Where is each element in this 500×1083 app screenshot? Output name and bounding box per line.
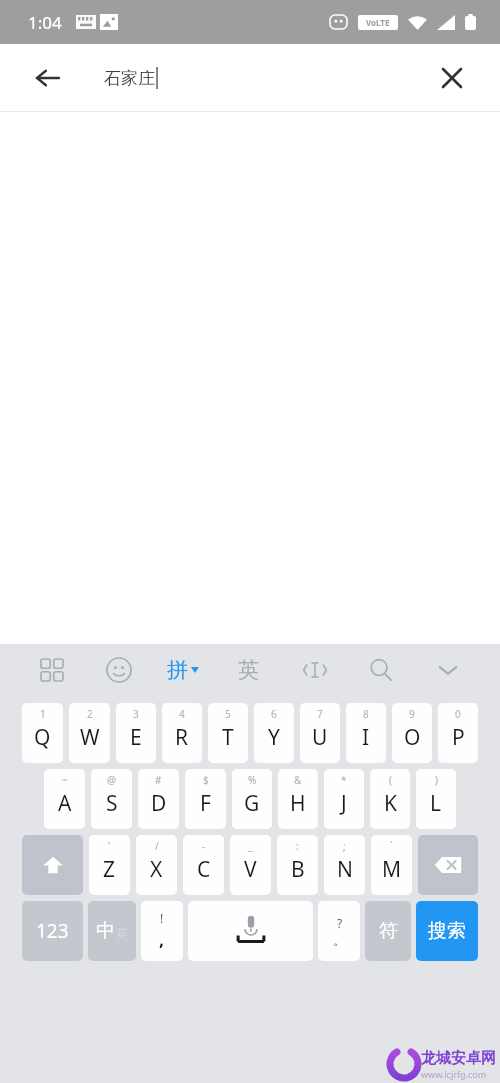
staticText: VoLTE — [366, 17, 390, 28]
button[interactable]: & — [278, 769, 318, 829]
staticText: N — [337, 855, 353, 884]
button[interactable]: 英 — [226, 648, 270, 692]
button[interactable]: Keyboard layouts — [30, 648, 74, 692]
staticText: 4 — [179, 707, 185, 721]
staticText: 7 — [317, 707, 323, 721]
staticText: & — [294, 773, 302, 787]
staticText: R — [175, 723, 189, 752]
staticText: 石家庄 — [104, 68, 155, 89]
button[interactable]: # — [138, 769, 179, 829]
button[interactable]: ; — [324, 835, 365, 895]
staticText: V — [244, 855, 257, 884]
button[interactable]: % — [232, 769, 272, 829]
staticText: 123 — [36, 918, 69, 944]
staticText: 符 — [379, 919, 398, 943]
staticText: 搜索 — [428, 919, 466, 943]
staticText: ; — [343, 839, 346, 853]
staticText: www.lcjrfg.com — [421, 1068, 487, 1080]
button[interactable]: 拼 — [163, 657, 203, 683]
button[interactable]: 5 — [208, 703, 248, 763]
button[interactable]: 符 — [365, 901, 411, 961]
button[interactable]: / — [136, 835, 177, 895]
button[interactable]: * — [324, 769, 364, 829]
staticText: - — [202, 839, 206, 853]
button[interactable]: 中 — [88, 901, 136, 961]
staticText: 8 — [363, 707, 369, 721]
staticText: F — [200, 789, 211, 818]
staticText: E — [130, 723, 142, 752]
staticText: 。 — [333, 932, 346, 948]
staticText: ~ — [62, 773, 68, 787]
button[interactable]: Hide keyboard — [426, 648, 470, 692]
staticText: B — [291, 855, 305, 884]
staticText: ! — [160, 910, 164, 926]
staticText: 1 — [40, 707, 46, 721]
button[interactable]: 7 — [300, 703, 340, 763]
staticText: 英 — [238, 657, 259, 683]
button[interactable]: Back — [22, 52, 74, 104]
staticText: P — [452, 723, 465, 752]
staticText: K — [384, 789, 397, 818]
button[interactable]: Emoji — [97, 648, 141, 692]
staticText: C — [197, 855, 211, 884]
staticText: G — [244, 789, 260, 818]
button[interactable]: ) — [416, 769, 456, 829]
button[interactable]: ' — [89, 835, 130, 895]
button[interactable]: 8 — [346, 703, 386, 763]
staticText: 5 — [225, 707, 231, 721]
button[interactable]: 1 — [22, 703, 63, 763]
staticText: M — [382, 855, 402, 884]
staticText: ? — [337, 915, 343, 931]
button[interactable]: ~ — [44, 769, 85, 829]
button[interactable]: 9 — [392, 703, 432, 763]
button[interactable]: $ — [185, 769, 226, 829]
button[interactable]: Backspace — [418, 835, 478, 895]
staticText: * — [341, 773, 347, 787]
button[interactable]: 搜索 — [416, 901, 478, 961]
staticText: % — [248, 773, 257, 787]
button[interactable]: - — [183, 835, 224, 895]
button[interactable]: 0 — [438, 703, 478, 763]
staticText: ` — [390, 839, 393, 853]
button[interactable]: _ — [230, 835, 271, 895]
staticText: 龙城安卓网 — [421, 1049, 496, 1068]
button[interactable]: 6 — [254, 703, 294, 763]
button[interactable]: Move cursor — [293, 648, 337, 692]
staticText: # — [155, 773, 162, 787]
button[interactable]: Clear — [428, 54, 476, 102]
button[interactable]: 123 — [22, 901, 83, 961]
staticText: $ — [203, 773, 209, 787]
button[interactable]: 2 — [69, 703, 110, 763]
staticText: 英 — [116, 926, 128, 941]
button[interactable]: Search — [359, 648, 403, 692]
staticText: Z — [103, 855, 116, 884]
button[interactable]: ` — [371, 835, 412, 895]
button[interactable]: Shift — [22, 835, 83, 895]
staticText: ( — [389, 773, 392, 787]
staticText: J — [341, 789, 347, 818]
staticText: S — [106, 789, 118, 818]
staticText: L — [430, 789, 442, 818]
button[interactable]: : — [277, 835, 318, 895]
staticText: 6 — [271, 707, 277, 721]
staticText: H — [290, 789, 306, 818]
staticText: 0 — [455, 707, 461, 721]
button[interactable]: ! — [141, 901, 183, 961]
staticText: , — [159, 927, 165, 952]
button[interactable]: 4 — [162, 703, 202, 763]
button[interactable]: 3 — [116, 703, 156, 763]
button[interactable]: Space — [188, 901, 313, 961]
button[interactable]: ? — [318, 901, 360, 961]
button[interactable]: @ — [91, 769, 132, 829]
staticText: U — [312, 723, 328, 752]
button[interactable]: ( — [370, 769, 410, 829]
staticText: I — [362, 723, 370, 752]
staticText: 1:04 — [28, 11, 62, 34]
staticText: 3 — [133, 707, 139, 721]
staticText: ' — [108, 839, 111, 853]
staticText: Q — [34, 723, 51, 752]
staticText: / — [155, 839, 159, 853]
staticText: Y — [268, 723, 280, 752]
staticText: W — [80, 723, 100, 752]
staticText: : — [296, 839, 299, 853]
